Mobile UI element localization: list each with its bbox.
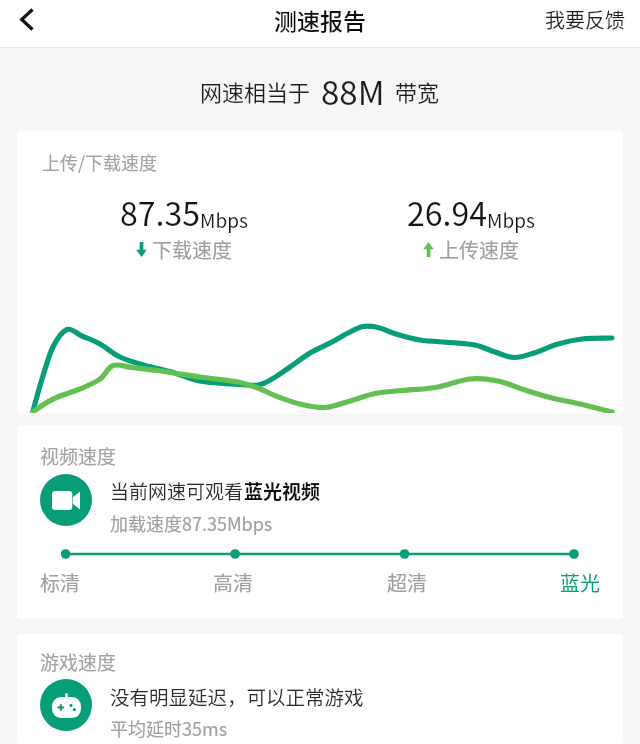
staticText: 带宽	[395, 75, 440, 107]
staticText: 蓝光	[560, 568, 600, 597]
button[interactable]: Back	[0, 0, 54, 38]
button[interactable]: Game speed	[40, 679, 92, 731]
staticText: 上传/下载速度	[42, 149, 158, 175]
staticText: 88M	[321, 67, 385, 115]
button[interactable]: 标清	[40, 568, 80, 597]
staticText: 视频速度	[40, 442, 117, 470]
staticText: 超清	[387, 568, 427, 597]
staticText: 当前网速可观看	[110, 477, 244, 505]
staticText: 上传速度	[439, 235, 519, 264]
staticText: Mbps	[200, 206, 248, 234]
staticText: 26.94	[407, 189, 487, 235]
staticText: 加载速度87.35Mbps	[110, 510, 273, 536]
button[interactable]: 我要反馈	[531, 0, 640, 38]
staticText: 标清	[40, 568, 80, 597]
staticText: 测速报告	[274, 3, 366, 36]
button[interactable]: 高清	[213, 568, 253, 597]
staticText: 蓝光视频	[244, 477, 321, 505]
staticText: 下载速度	[152, 235, 232, 264]
staticText: 网速相当于	[200, 75, 311, 107]
staticText: 高清	[213, 568, 253, 597]
staticText: 平均延时35ms	[110, 715, 228, 741]
button[interactable]: Video quality	[40, 474, 92, 526]
button[interactable]: 超清	[387, 568, 427, 597]
staticText: 没有明显延迟，可以正常游戏	[110, 682, 364, 710]
staticText: Mbps	[487, 206, 535, 234]
button[interactable]: 蓝光	[560, 568, 600, 597]
staticText: 我要反馈	[545, 5, 625, 34]
staticText: 87.35	[120, 189, 200, 235]
staticText: 游戏速度	[40, 648, 117, 676]
